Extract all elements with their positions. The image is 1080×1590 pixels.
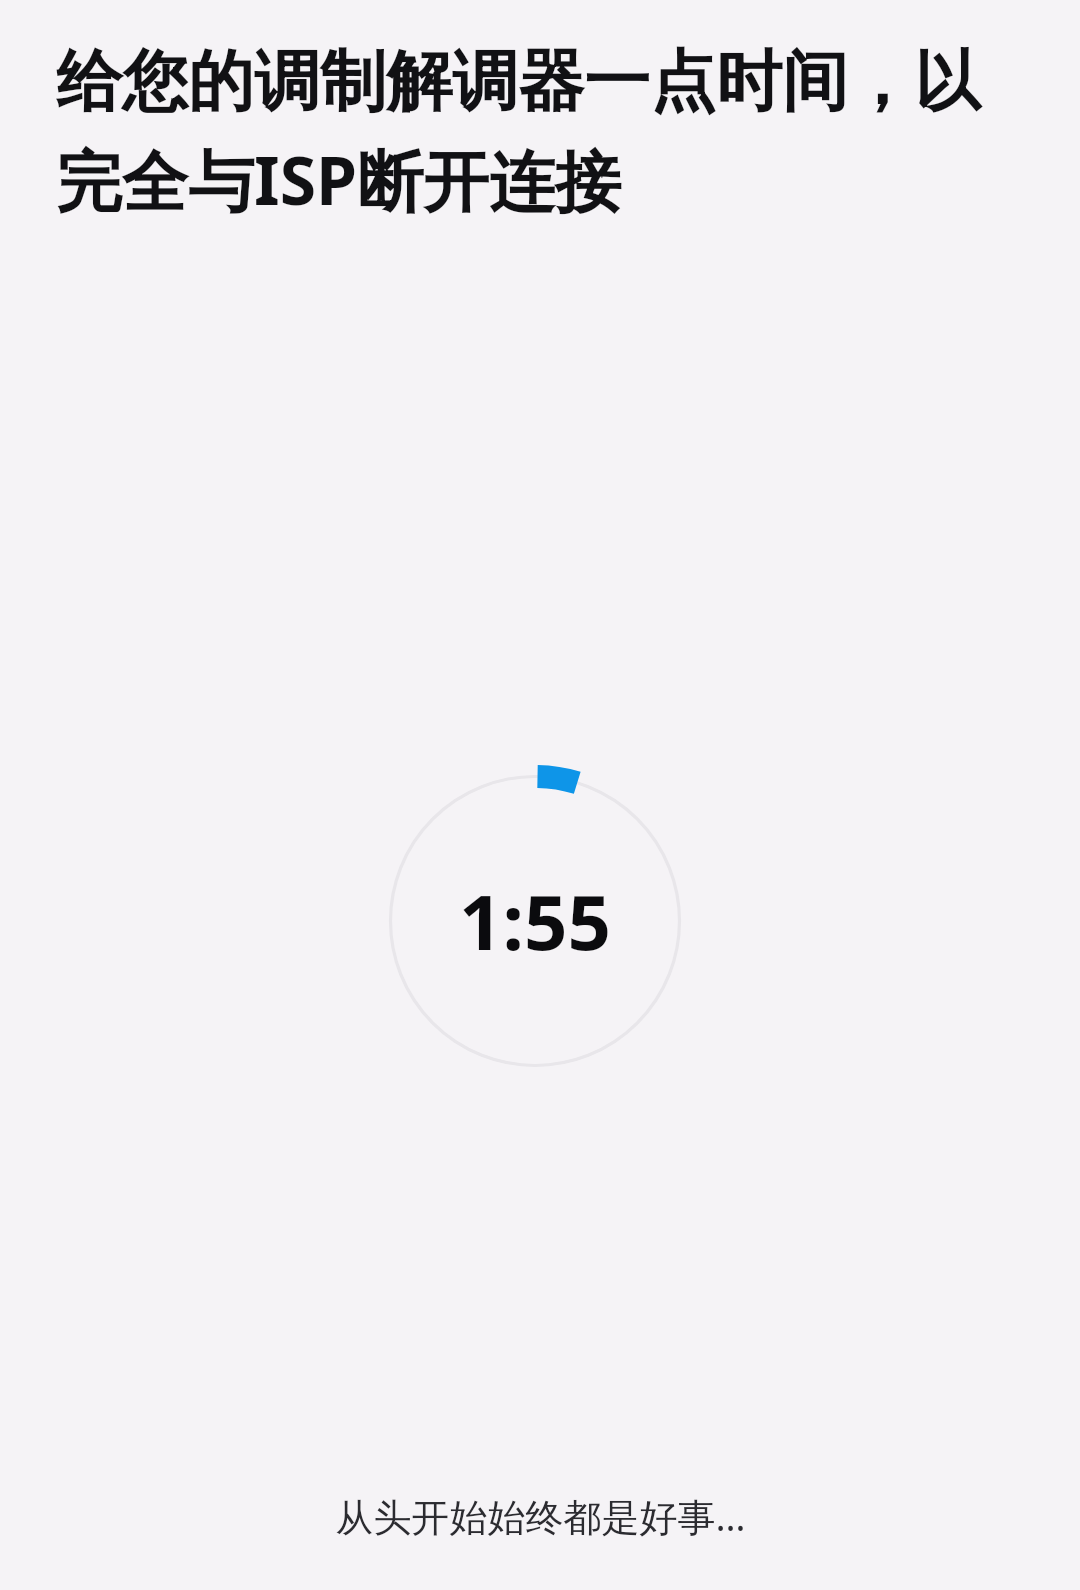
staticText: 给您的调制解调器一点时间，以完全与ISP断开连接 (56, 40, 1024, 225)
staticText: 1:55 (459, 869, 611, 973)
button[interactable]: Countdown timer (379, 765, 691, 1077)
staticText: 从头开始始终都是好事… (335, 1490, 746, 1542)
